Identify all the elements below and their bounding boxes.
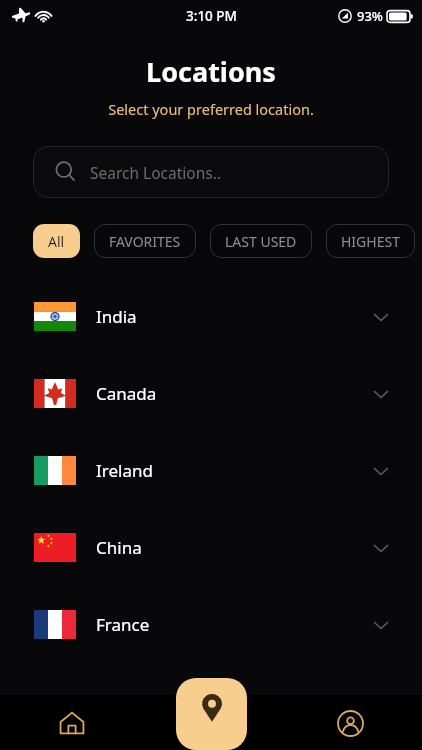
staticText: Select your preferred location. — [0, 99, 422, 119]
staticText: LAST USED — [225, 232, 297, 251]
button[interactable]: LAST USED — [210, 224, 312, 258]
button[interactable]: Profile — [326, 699, 374, 747]
button[interactable]: HIGHEST — [326, 224, 415, 258]
staticText: All — [48, 232, 65, 251]
button[interactable]: Home — [48, 699, 96, 747]
staticText: Canada — [96, 382, 157, 405]
staticText: 3:10 PM — [186, 7, 237, 25]
button[interactable]: Search Locations.. — [33, 146, 389, 198]
button[interactable]: China — [0, 509, 422, 586]
staticText: France — [96, 613, 150, 636]
staticText: FAVORITES — [109, 232, 181, 251]
staticText: India — [96, 305, 137, 328]
button[interactable]: Locations — [176, 678, 247, 750]
staticText: HIGHEST — [341, 232, 400, 251]
staticText: Locations — [0, 53, 422, 90]
button[interactable]: Canada — [0, 355, 422, 432]
staticText: Search Locations.. — [90, 162, 222, 183]
staticText: 93% — [357, 7, 383, 25]
button[interactable]: France — [0, 586, 422, 663]
button[interactable]: Ireland — [0, 432, 422, 509]
button[interactable]: All — [33, 224, 80, 258]
staticText: China — [96, 536, 142, 559]
button[interactable]: India — [0, 278, 422, 355]
button[interactable]: FAVORITES — [94, 224, 196, 258]
staticText: Ireland — [96, 459, 153, 482]
